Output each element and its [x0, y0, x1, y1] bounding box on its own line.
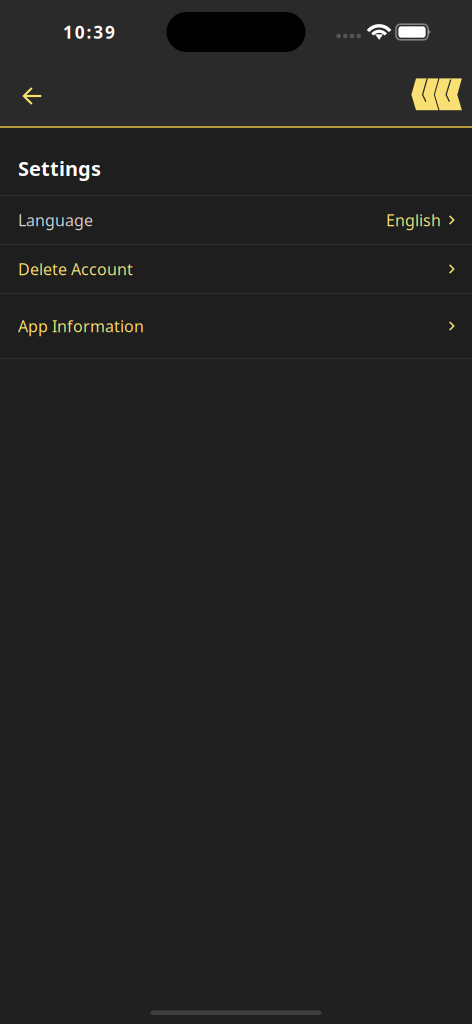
button[interactable]: Language — [0, 196, 472, 244]
button[interactable]: Back — [10, 74, 54, 118]
button[interactable]: Home — [411, 74, 462, 118]
button[interactable]: App Information — [0, 294, 472, 358]
button[interactable]: Delete Account — [0, 245, 472, 293]
staticText: Settings — [18, 155, 101, 182]
staticText: 10:39 — [63, 20, 115, 43]
staticText: Delete Account — [18, 258, 133, 280]
staticText: App Information — [18, 315, 144, 337]
staticText: Language — [18, 209, 93, 231]
staticText: English — [386, 209, 441, 231]
